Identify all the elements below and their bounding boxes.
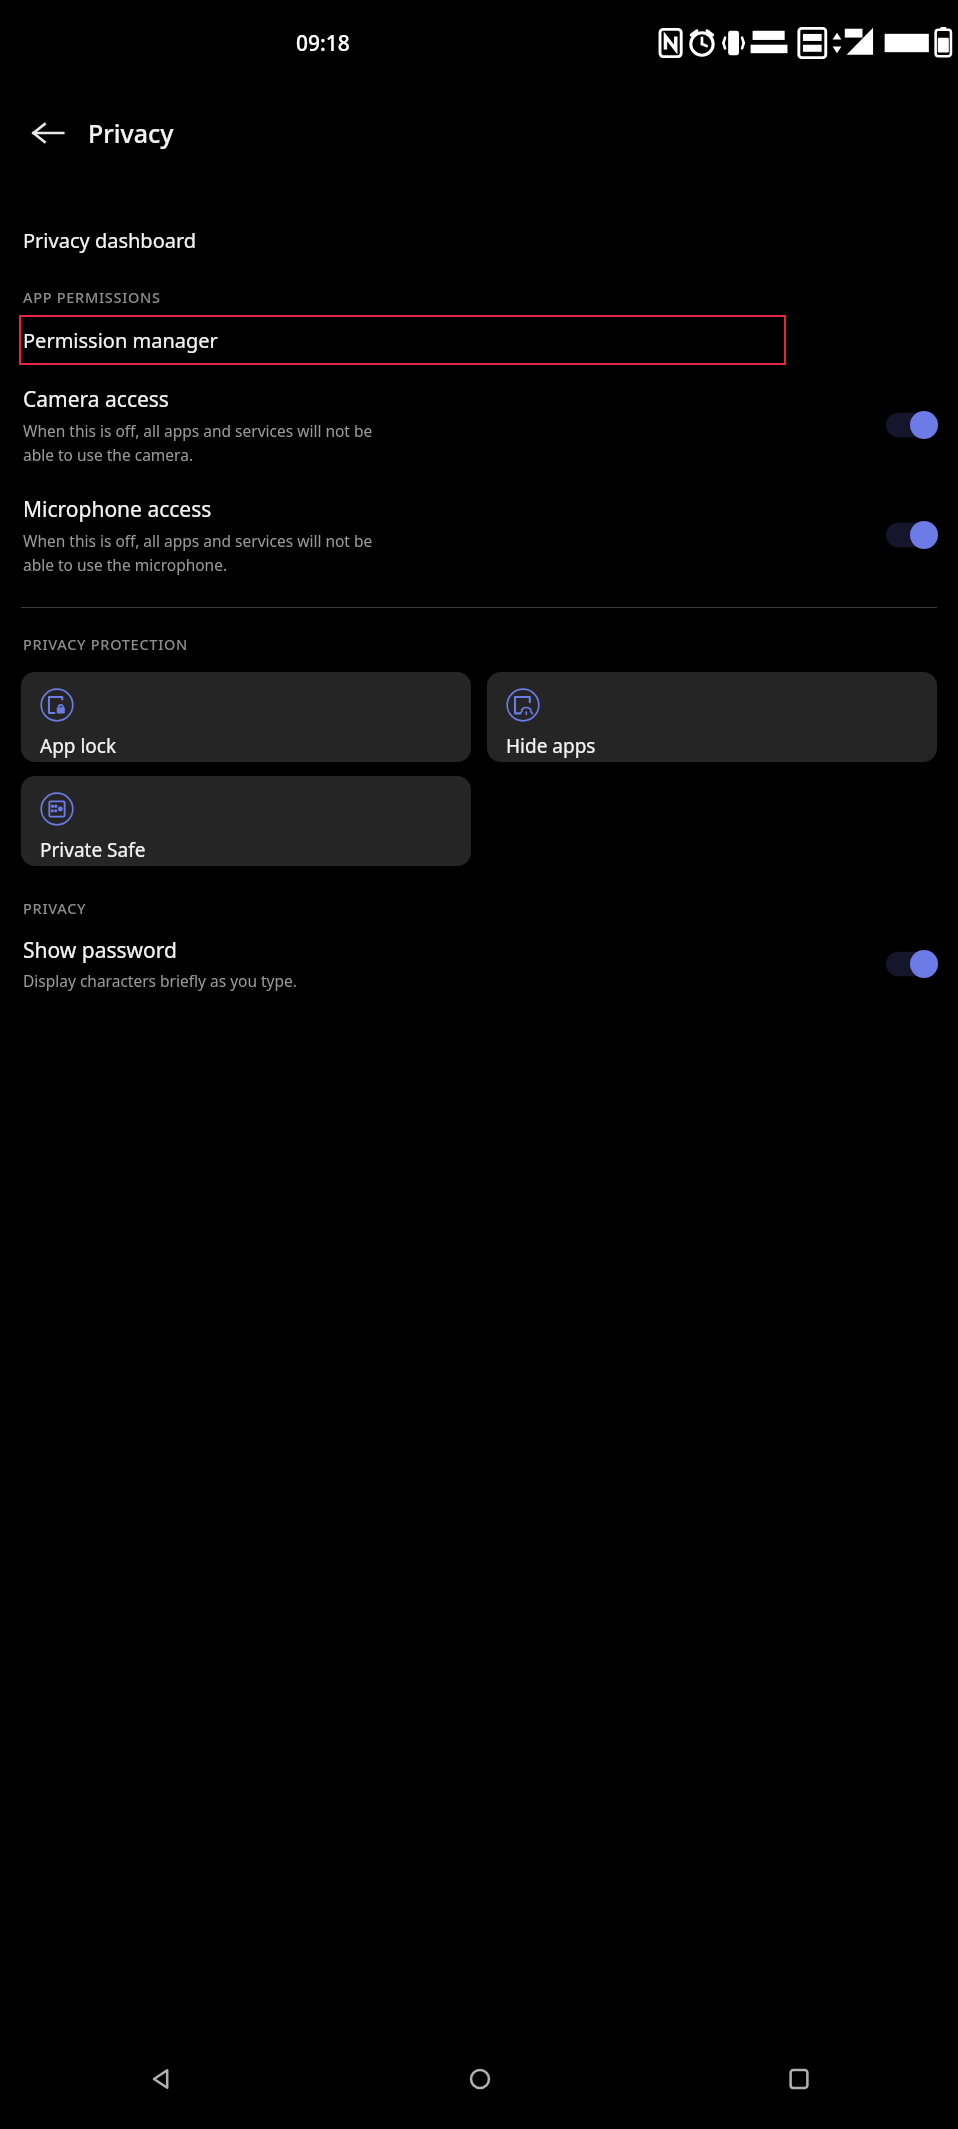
button[interactable]: Microphone access	[0, 491, 958, 579]
staticText: Private Safe	[40, 837, 146, 863]
staticText: 09:18	[296, 29, 350, 58]
button[interactable]: Camera access	[0, 381, 958, 469]
button[interactable]: Privacy dashboard	[0, 211, 958, 269]
button[interactable]: Toggle	[886, 521, 938, 549]
button[interactable]: Toggle	[886, 411, 938, 439]
staticText: App lock	[40, 733, 117, 759]
button[interactable]: Back	[0, 2029, 320, 2129]
staticText: PRIVACY PROTECTION	[23, 634, 189, 654]
button[interactable]: Hide apps	[487, 672, 937, 762]
staticText: When this is off, all apps and services …	[23, 420, 373, 465]
staticText: Camera access	[23, 385, 169, 414]
button[interactable]: Back	[20, 105, 76, 161]
staticText: Privacy dashboard	[23, 227, 197, 254]
button[interactable]: Private Safe	[21, 776, 471, 866]
button[interactable]: App lock	[21, 672, 471, 762]
button[interactable]: Home	[320, 2029, 639, 2129]
staticText: Microphone access	[23, 495, 212, 524]
staticText: Display characters briefly as you type.	[23, 970, 297, 991]
staticText: When this is off, all apps and services …	[23, 530, 373, 575]
staticText: APP PERMISSIONS	[23, 287, 161, 307]
button[interactable]: Recent apps	[639, 2029, 958, 2129]
staticText: Privacy	[88, 116, 174, 150]
button[interactable]: Permission manager	[19, 315, 786, 365]
staticText: PRIVACY	[23, 898, 87, 918]
staticText: Hide apps	[506, 733, 596, 759]
button[interactable]: Show password	[0, 932, 958, 995]
staticText: Permission manager	[23, 327, 218, 354]
button[interactable]: Toggle	[886, 950, 938, 978]
staticText: Show password	[23, 936, 177, 965]
